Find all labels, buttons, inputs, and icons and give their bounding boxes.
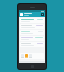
button[interactable] [20,30,44,35]
button[interactable]: Open navigation [20,13,23,16]
button[interactable] [20,18,44,23]
button[interactable]: More options [41,13,44,16]
button[interactable] [20,53,44,59]
button[interactable] [20,36,44,41]
button[interactable] [20,42,44,47]
button[interactable] [20,24,44,29]
